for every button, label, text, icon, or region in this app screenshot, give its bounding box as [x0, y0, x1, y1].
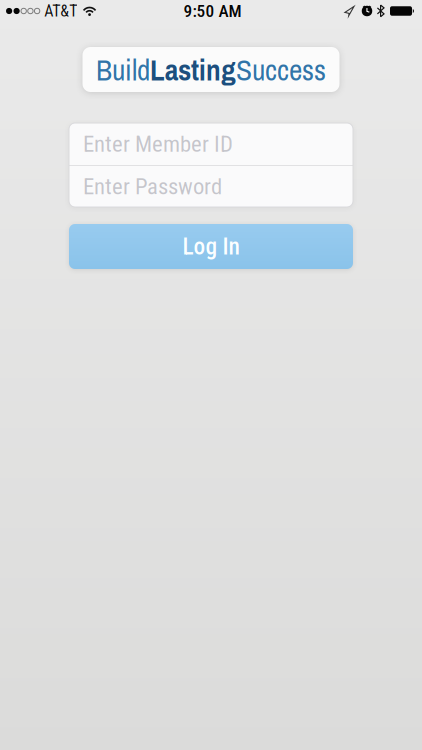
button[interactable]: Enter Member ID: [69, 123, 353, 165]
staticText: Enter Password: [83, 173, 222, 200]
staticText: Lasting: [150, 50, 236, 90]
button[interactable]: Enter Password: [69, 166, 353, 207]
staticText: Enter Member ID: [83, 131, 233, 157]
staticText: Log In: [182, 233, 239, 260]
button[interactable]: Log In: [69, 224, 353, 269]
staticText: Build: [96, 50, 150, 90]
staticText: Success: [236, 50, 326, 90]
staticText: AT&T: [44, 2, 77, 20]
staticText: 9:50 AM: [183, 1, 241, 21]
